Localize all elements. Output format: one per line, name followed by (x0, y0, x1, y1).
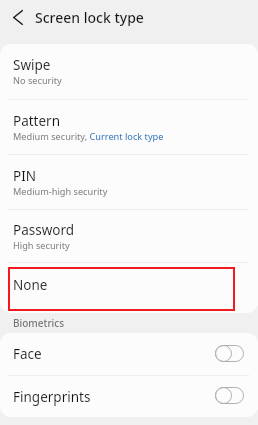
staticText: No security (13, 74, 62, 87)
button[interactable]: Pattern (0, 100, 258, 154)
staticText: PIN (13, 167, 37, 185)
button[interactable]: Password (0, 210, 258, 262)
staticText: None (13, 276, 48, 294)
staticText: Password (13, 221, 75, 239)
staticText: Face (13, 345, 42, 363)
staticText: Medium-high security (13, 185, 108, 198)
staticText: Pattern (13, 112, 61, 130)
button[interactable]: Fingerprints (0, 376, 258, 417)
staticText: Swipe (13, 56, 51, 74)
staticText: Biometrics (13, 316, 65, 330)
button[interactable]: None (0, 263, 258, 313)
button[interactable]: Face (0, 333, 258, 375)
button[interactable]: PIN (0, 155, 258, 209)
button[interactable]: Swipe (0, 44, 258, 99)
staticText: Medium security, Current lock type (13, 130, 164, 143)
button[interactable]: Toggle Face (215, 345, 244, 362)
button[interactable]: Navigate up (0, 0, 35, 34)
staticText: Screen lock type (35, 8, 144, 27)
button[interactable]: Toggle Fingerprints (215, 387, 244, 404)
staticText: High security (13, 239, 70, 252)
staticText: Fingerprints (13, 388, 91, 406)
